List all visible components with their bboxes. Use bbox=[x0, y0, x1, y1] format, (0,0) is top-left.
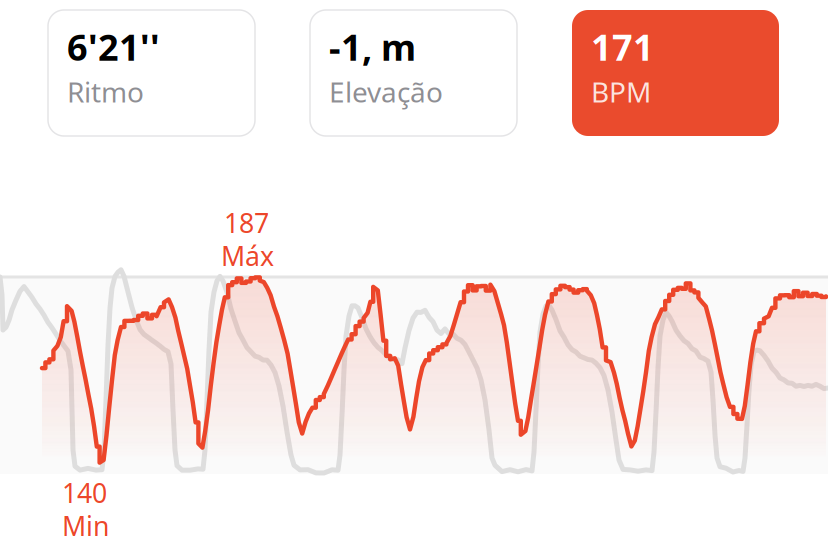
button[interactable]: -1, m bbox=[310, 10, 517, 136]
staticText: Máx bbox=[221, 238, 274, 273]
staticText: 171 bbox=[591, 23, 654, 71]
staticText: Min bbox=[62, 508, 109, 540]
staticText: -1, m bbox=[329, 23, 416, 71]
button[interactable]: 6'21'' bbox=[48, 10, 255, 136]
staticText: BPM bbox=[591, 73, 651, 110]
staticText: 140 bbox=[62, 475, 107, 510]
button[interactable]: 171 bbox=[572, 10, 779, 136]
staticText: 6'21'' bbox=[67, 23, 160, 71]
staticText: Ritmo bbox=[67, 73, 144, 110]
staticText: Elevação bbox=[329, 73, 443, 110]
staticText: 187 bbox=[224, 205, 269, 240]
